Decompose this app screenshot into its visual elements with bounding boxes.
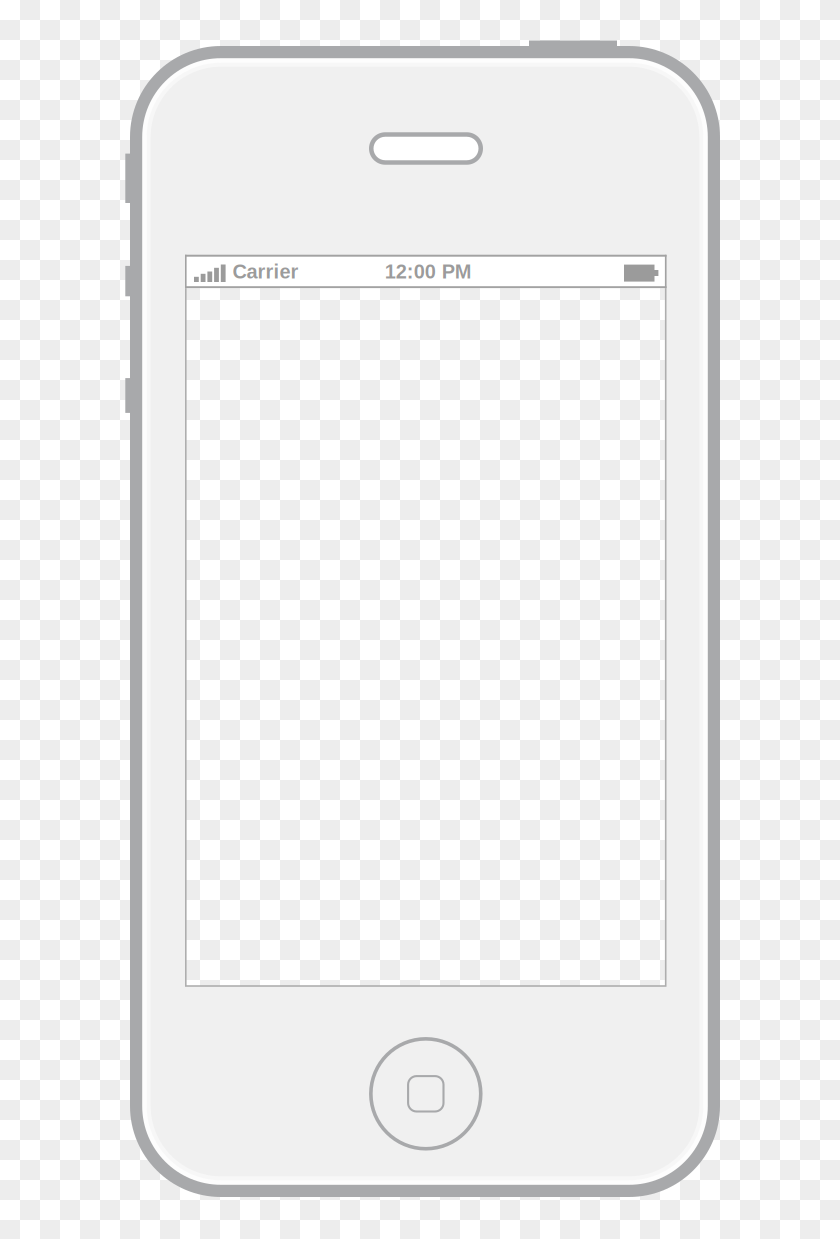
button[interactable]: Ring/Silent switch [125, 154, 132, 203]
staticText: Carrier [232, 260, 298, 283]
staticText: 12:00 PM [385, 260, 472, 283]
button[interactable]: Sleep/Wake [529, 40, 617, 47]
button[interactable]: Home [369, 1037, 483, 1150]
button[interactable]: Volume down [125, 378, 132, 413]
button[interactable]: Volume up [125, 266, 132, 296]
